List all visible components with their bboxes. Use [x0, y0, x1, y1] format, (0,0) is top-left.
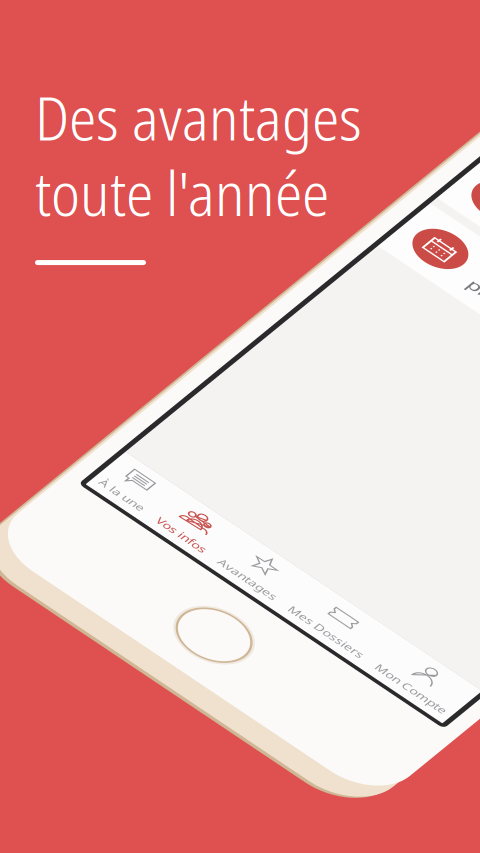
button[interactable]: Mon Compte — [289, 604, 373, 668]
staticText: Vos infos — [67, 643, 117, 659]
button[interactable]: Consultez vos — [0, 142, 375, 221]
button[interactable]: Suivez vos — [0, 52, 375, 132]
button[interactable]: Vos infos — [61, 604, 123, 668]
staticText: prochains rendez-vous — [80, 182, 278, 207]
button[interactable]: Avantages — [125, 604, 196, 668]
button[interactable]: À la une — [2, 604, 59, 668]
staticText: Mon Compte — [295, 643, 367, 659]
staticText: Avantages — [131, 643, 190, 659]
staticText: Consultez vos — [80, 156, 201, 180]
staticText: Des avantages — [35, 75, 362, 158]
staticText: remboursements — [80, 93, 233, 118]
staticText: toute l'année — [35, 150, 329, 234]
button[interactable]: Mes Dossiers — [199, 604, 287, 668]
staticText: Mes Dossiers — [205, 643, 281, 659]
